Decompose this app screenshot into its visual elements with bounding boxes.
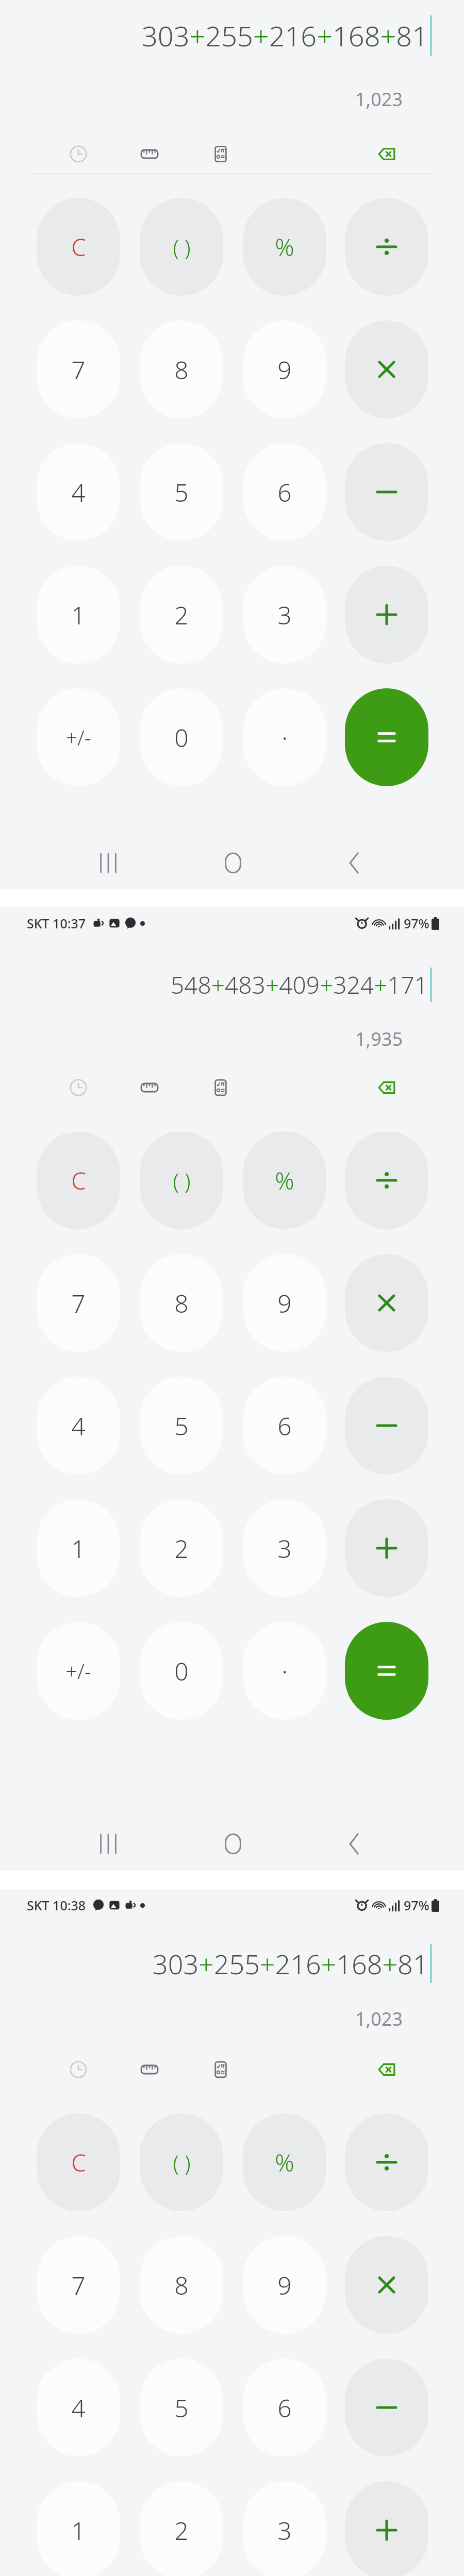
- staticText: 3: [277, 2514, 292, 2547]
- button[interactable]: Subtract: [345, 443, 428, 541]
- button[interactable]: 5: [140, 443, 223, 541]
- staticText: 5: [174, 1409, 189, 1443]
- button[interactable]: C: [37, 1131, 120, 1229]
- button[interactable]: Backspace: [371, 1072, 403, 1104]
- staticText: 6: [277, 2391, 292, 2425]
- button[interactable]: Scientific calculator: [205, 1072, 237, 1104]
- button[interactable]: 4: [37, 1377, 120, 1475]
- button[interactable]: Subtract: [345, 2359, 428, 2456]
- button[interactable]: 4: [37, 2359, 120, 2456]
- button[interactable]: 2: [140, 566, 223, 664]
- button[interactable]: Home: [206, 837, 260, 889]
- button[interactable]: 8: [140, 320, 223, 418]
- button[interactable]: 6: [243, 2359, 326, 2456]
- staticText: 5: [174, 2391, 189, 2425]
- button[interactable]: Equals: [345, 688, 428, 786]
- button[interactable]: History: [62, 1072, 94, 1104]
- button[interactable]: ( ): [140, 198, 223, 296]
- button[interactable]: Back: [328, 1817, 383, 1871]
- button[interactable]: 2: [140, 1499, 223, 1597]
- button[interactable]: C: [37, 2113, 120, 2211]
- staticText: 0: [174, 721, 189, 754]
- button[interactable]: History: [62, 138, 94, 170]
- button[interactable]: 3: [243, 2481, 326, 2576]
- button[interactable]: Divide: [345, 2113, 428, 2211]
- staticText: 3: [277, 598, 292, 632]
- button[interactable]: Add: [345, 566, 428, 664]
- staticText: %: [275, 231, 294, 263]
- button[interactable]: Recents: [81, 1817, 136, 1871]
- button[interactable]: Multiply: [345, 1254, 428, 1352]
- button[interactable]: %: [243, 1131, 326, 1229]
- button[interactable]: Unit converter: [134, 1072, 165, 1104]
- button[interactable]: %: [243, 198, 326, 296]
- button[interactable]: Back: [328, 837, 383, 889]
- button[interactable]: 3: [243, 1499, 326, 1597]
- button[interactable]: 9: [243, 320, 326, 418]
- button[interactable]: History: [62, 2054, 94, 2086]
- button[interactable]: 7: [37, 1254, 120, 1352]
- staticText: 1,023: [355, 2006, 403, 2031]
- button[interactable]: Subtract: [345, 1377, 428, 1475]
- button[interactable]: 5: [140, 2359, 223, 2456]
- button[interactable]: %: [243, 2113, 326, 2211]
- button[interactable]: 9: [243, 2236, 326, 2334]
- staticText: 5: [174, 476, 189, 509]
- button[interactable]: Multiply: [345, 2236, 428, 2334]
- staticText: 6: [277, 476, 292, 509]
- button[interactable]: Unit converter: [134, 2054, 165, 2086]
- staticText: 2: [174, 2514, 189, 2547]
- button[interactable]: Backspace: [371, 2054, 403, 2086]
- staticText: 303+255+216+168+81: [153, 1945, 428, 1982]
- button[interactable]: 9: [243, 1254, 326, 1352]
- button[interactable]: Scientific calculator: [205, 138, 237, 170]
- staticText: +/-: [65, 1657, 91, 1685]
- button[interactable]: Home: [206, 1817, 260, 1871]
- button[interactable]: 5: [140, 1377, 223, 1475]
- button[interactable]: Scientific calculator: [205, 2054, 237, 2086]
- button[interactable]: Add: [345, 1499, 428, 1597]
- button[interactable]: 1: [37, 2481, 120, 2576]
- button[interactable]: 1: [37, 1499, 120, 1597]
- button[interactable]: Unit converter: [134, 138, 165, 170]
- staticText: ·: [281, 1654, 288, 1688]
- button[interactable]: Recents: [81, 837, 136, 889]
- staticText: 303+255+216+168+81: [142, 16, 428, 55]
- button[interactable]: ( ): [140, 2113, 223, 2211]
- button[interactable]: 1: [37, 566, 120, 664]
- staticText: ( ): [173, 232, 191, 262]
- button[interactable]: +/-: [37, 688, 120, 786]
- button[interactable]: 7: [37, 2236, 120, 2334]
- button[interactable]: 8: [140, 1254, 223, 1352]
- staticText: 1: [71, 598, 86, 632]
- button[interactable]: ·: [243, 688, 326, 786]
- button[interactable]: Divide: [345, 1131, 428, 1229]
- button[interactable]: 2: [140, 2481, 223, 2576]
- button[interactable]: Divide: [345, 198, 428, 296]
- button[interactable]: ( ): [140, 1131, 223, 1229]
- button[interactable]: 6: [243, 443, 326, 541]
- button[interactable]: Equals: [345, 1622, 428, 1720]
- staticText: C: [71, 2146, 86, 2179]
- staticText: 3: [277, 1532, 292, 1565]
- button[interactable]: 0: [140, 1622, 223, 1720]
- button[interactable]: ·: [243, 1622, 326, 1720]
- button[interactable]: 0: [140, 688, 223, 786]
- button[interactable]: Add: [345, 2481, 428, 2576]
- staticText: 2: [174, 598, 189, 632]
- button[interactable]: 4: [37, 443, 120, 541]
- button[interactable]: 7: [37, 320, 120, 418]
- button[interactable]: 3: [243, 566, 326, 664]
- button[interactable]: C: [37, 198, 120, 296]
- staticText: 9: [277, 1286, 292, 1320]
- staticText: 2: [174, 1532, 189, 1565]
- button[interactable]: +/-: [37, 1622, 120, 1720]
- staticText: 4: [71, 476, 86, 509]
- staticText: 6: [277, 1409, 292, 1443]
- button[interactable]: 6: [243, 1377, 326, 1475]
- button[interactable]: Multiply: [345, 320, 428, 418]
- button[interactable]: 8: [140, 2236, 223, 2334]
- button[interactable]: Backspace: [371, 138, 403, 170]
- staticText: 8: [174, 353, 189, 386]
- staticText: ( ): [173, 1166, 191, 1195]
